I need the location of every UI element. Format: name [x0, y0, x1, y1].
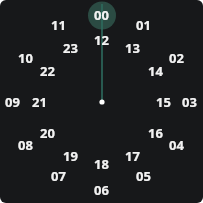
button[interactable]: Hour 17	[125, 147, 140, 165]
button[interactable]: Hour 14	[148, 62, 163, 80]
button[interactable]: Hour 11	[51, 16, 66, 34]
staticText: 18	[94, 155, 109, 173]
staticText: 22	[40, 62, 55, 80]
button[interactable]: Hour 15	[156, 93, 171, 111]
button[interactable]: Hour 05	[136, 167, 151, 185]
staticText: 11	[51, 16, 66, 34]
staticText: 00	[94, 6, 109, 24]
staticText: 06	[94, 181, 109, 199]
button[interactable]: Hour 23	[63, 39, 78, 57]
staticText: 20	[40, 124, 55, 142]
button[interactable]: Hour 21	[32, 93, 47, 111]
button[interactable]: Hour 22	[40, 62, 55, 80]
button[interactable]: Hour 09	[5, 93, 20, 111]
staticText: 23	[63, 39, 78, 57]
button[interactable]: Hour 10	[18, 49, 33, 67]
button[interactable]: Hour 12	[94, 31, 109, 49]
button[interactable]: Hour 08	[18, 136, 33, 154]
staticText: 10	[18, 49, 33, 67]
staticText: 14	[148, 62, 163, 80]
button[interactable]: Hour 04	[169, 136, 184, 154]
staticText: 15	[156, 93, 171, 111]
button[interactable]: Hour 02	[169, 49, 184, 67]
button[interactable]: Hour 16	[148, 124, 163, 142]
button[interactable]: 24 hour watch face	[0, 0, 203, 203]
staticText: 21	[32, 93, 47, 111]
staticText: 12	[94, 31, 109, 49]
staticText: 03	[182, 93, 197, 111]
button[interactable]: Hour 03	[182, 93, 197, 111]
staticText: 02	[169, 49, 184, 67]
button[interactable]: Hour 20	[40, 124, 55, 142]
staticText: 13	[125, 39, 140, 57]
button[interactable]: Hour 13	[125, 39, 140, 57]
staticText: 19	[63, 147, 78, 165]
staticText: 08	[18, 136, 33, 154]
button[interactable]: Hour 18	[94, 155, 109, 173]
button[interactable]: Hour 19	[63, 147, 78, 165]
staticText: 05	[136, 167, 151, 185]
staticText: 16	[148, 124, 163, 142]
button[interactable]: Hour 07	[51, 167, 66, 185]
staticText: 17	[125, 147, 140, 165]
staticText: 04	[169, 136, 184, 154]
button[interactable]: Hour 00	[94, 6, 109, 24]
staticText: 09	[5, 93, 20, 111]
staticText: 01	[136, 16, 151, 34]
staticText: 07	[51, 167, 66, 185]
button[interactable]: Hour 06	[94, 181, 109, 199]
button[interactable]: Hour 01	[136, 16, 151, 34]
